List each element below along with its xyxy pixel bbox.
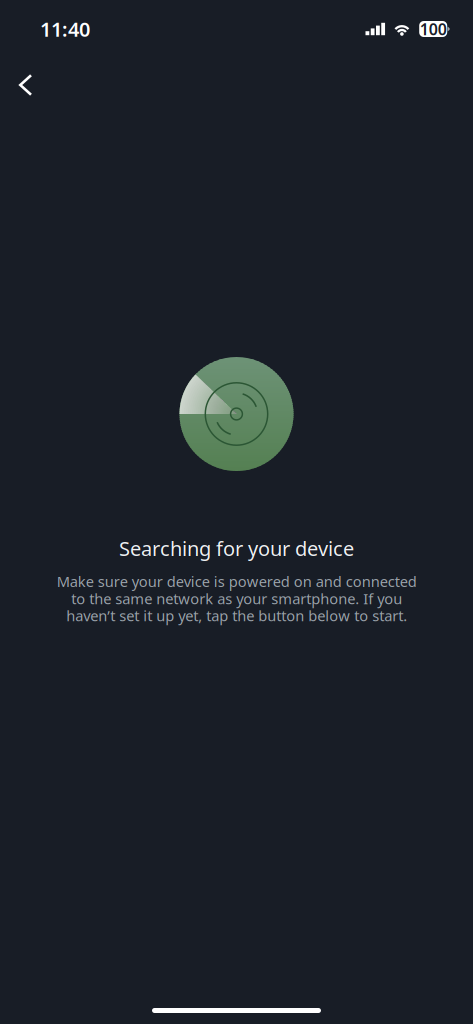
staticText: 11:40 [40, 16, 90, 42]
staticText: 100 [420, 18, 447, 40]
staticText: Make sure your device is powered on and … [56, 572, 416, 625]
staticText: Searching for your device [119, 535, 354, 562]
button[interactable]: Back [0, 58, 46, 104]
